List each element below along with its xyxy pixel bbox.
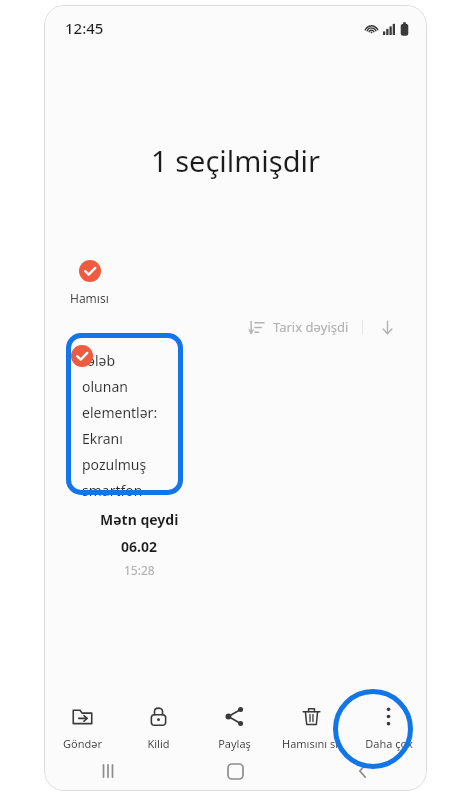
button[interactable]: Tarix dəyişdi [249,318,395,336]
staticText: tələb [82,351,116,370]
staticText: 06.02 [121,537,157,556]
button[interactable]: Back [299,751,427,791]
staticText: Tarix dəyişdi [273,318,349,336]
button[interactable]: Home [171,751,299,791]
button[interactable]: Daha çox [350,699,427,758]
staticText: Kilid [147,736,170,751]
button[interactable]: Hamısı [70,260,109,306]
staticText: smartfon [82,481,143,500]
staticText: 1 seçilmişdir [151,141,321,180]
staticText: pozulmuş [82,455,147,474]
staticText: Göndər [63,736,102,751]
staticText: Mətn qeydi [100,510,179,529]
staticText: olunan [82,377,128,396]
button[interactable]: Hamısını sil [273,699,350,758]
staticText: elementlər: [82,403,158,422]
button[interactable]: tələb [66,341,188,503]
staticText: Hamısını sil [282,736,341,751]
button[interactable]: Kilid [120,699,196,758]
staticText: Hamısı [70,290,109,306]
staticText: Daha çox [365,736,413,751]
staticText: 12:45 [65,18,104,38]
staticText: Paylaş [218,736,251,751]
button[interactable]: Paylaş [196,699,273,758]
button[interactable]: Göndər [44,699,120,758]
button[interactable]: Recents [44,751,171,791]
staticText: Ekranı [82,429,123,448]
staticText: 15:28 [124,562,155,578]
